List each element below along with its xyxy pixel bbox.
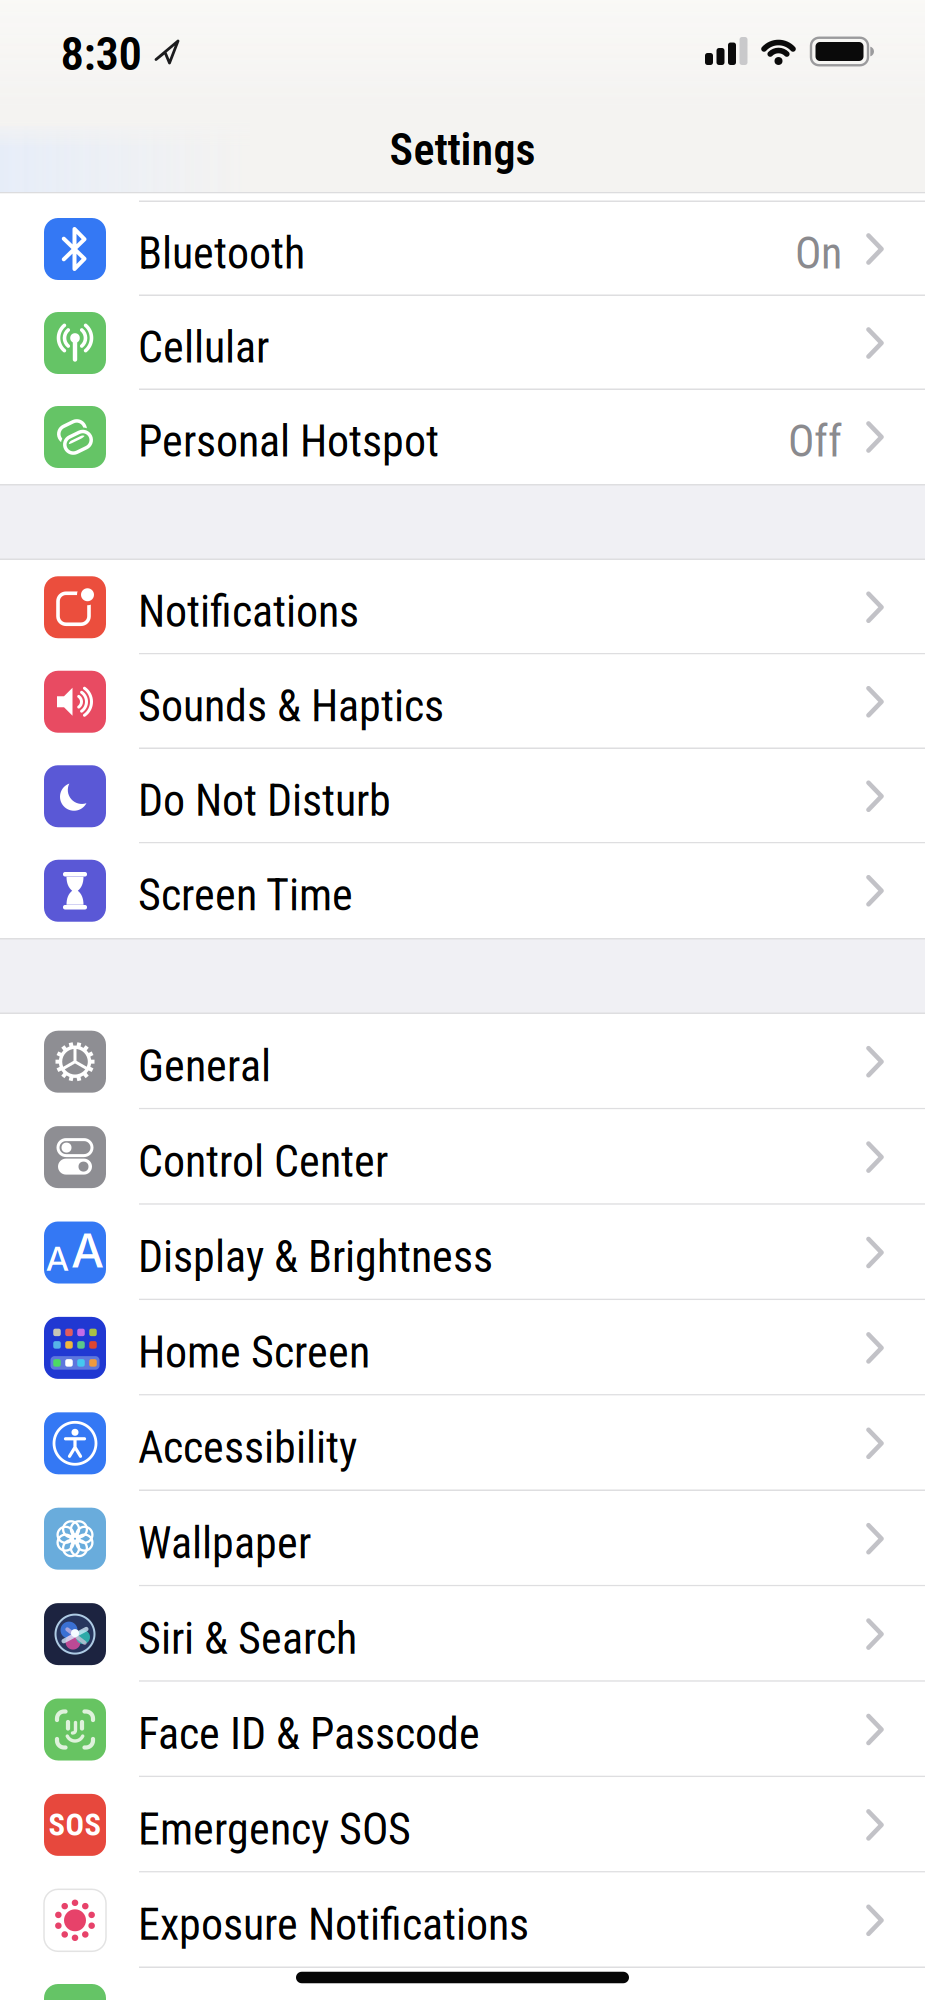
staticText: Personal Hotspot <box>138 416 439 467</box>
button[interactable]: SOS <box>0 1777 925 1873</box>
staticText: Bluetooth <box>138 228 305 279</box>
staticText: On <box>795 228 842 279</box>
button[interactable]: Notifications <box>0 560 925 654</box>
staticText: Cellular <box>138 322 269 373</box>
staticText: Wallpaper <box>138 1517 311 1569</box>
staticText: Sounds & Haptics <box>138 680 444 732</box>
button[interactable]: Do Not Disturb <box>0 749 925 843</box>
button[interactable]: Sounds & Haptics <box>0 654 925 749</box>
staticText: Display & Brightness <box>138 1231 493 1283</box>
staticText: A <box>46 1238 69 1279</box>
button[interactable]: Screen Time <box>0 843 925 938</box>
staticText: Home Screen <box>138 1327 370 1378</box>
staticText: Do Not Disturb <box>138 775 391 827</box>
staticText: Emergency SOS <box>138 1804 411 1855</box>
button[interactable]: Exposure Notifications <box>0 1873 925 1968</box>
button[interactable]: Cellular <box>0 296 925 390</box>
staticText: Face ID & Passcode <box>138 1708 480 1760</box>
staticText: General <box>138 1040 271 1092</box>
button[interactable]: Control Center <box>0 1109 925 1205</box>
button[interactable]: Wallpaper <box>0 1491 925 1586</box>
staticText: A <box>71 1222 104 1279</box>
button[interactable]: A <box>0 1205 925 1300</box>
button[interactable]: General <box>0 1014 925 1109</box>
staticText: Off <box>788 416 842 467</box>
staticText: 8:30 <box>60 27 141 81</box>
button[interactable]: Accessibility <box>0 1396 925 1491</box>
staticText: Exposure Notifications <box>138 1899 529 1951</box>
button[interactable]: Battery <box>0 1968 925 2000</box>
staticText: Control Center <box>138 1136 388 1187</box>
staticText: SOS <box>48 1807 101 1843</box>
button[interactable]: Face ID & Passcode <box>0 1682 925 1777</box>
button[interactable]: Personal Hotspot <box>0 390 925 484</box>
staticText: Settings <box>389 124 535 176</box>
staticText: Screen Time <box>138 869 353 921</box>
button[interactable]: Bluetooth <box>0 202 925 296</box>
staticText: Accessibility <box>138 1422 357 1474</box>
button[interactable]: Home Screen <box>0 1300 925 1396</box>
staticText: Notifications <box>138 586 359 638</box>
staticText: Siri & Search <box>138 1613 357 1664</box>
button[interactable]: Siri & Search <box>0 1586 925 1682</box>
